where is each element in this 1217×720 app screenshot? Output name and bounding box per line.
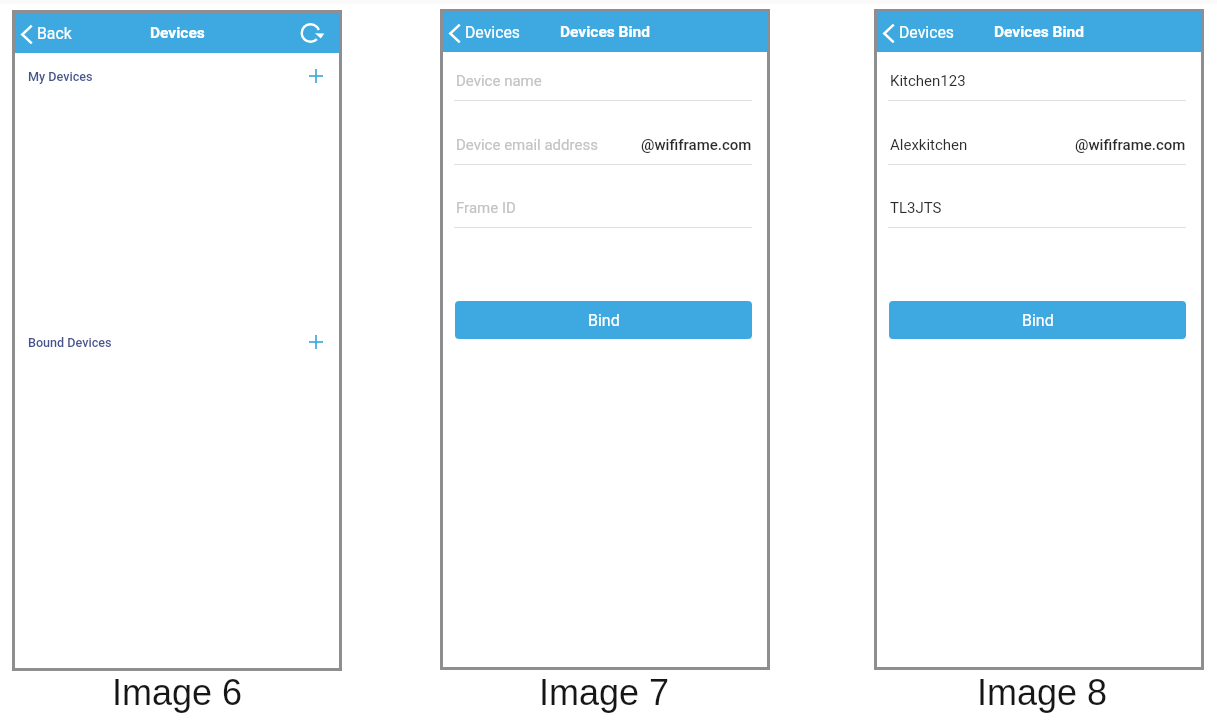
staticText: Frame ID bbox=[456, 199, 516, 217]
staticText: Image 6 bbox=[12, 672, 342, 712]
staticText: Devices Bind bbox=[994, 23, 1085, 41]
staticText: Devices bbox=[899, 23, 954, 42]
button[interactable]: Kitchen123 bbox=[877, 69, 1201, 93]
staticText: @wififrame.com bbox=[641, 136, 752, 154]
button[interactable]: Back bbox=[15, 13, 80, 53]
staticText: Alexkitchen bbox=[890, 136, 968, 154]
button[interactable]: Bind bbox=[455, 301, 752, 339]
button[interactable]: Devices bbox=[443, 12, 528, 52]
staticText: Kitchen123 bbox=[890, 72, 966, 90]
staticText: Image 7 bbox=[439, 672, 769, 712]
staticText: Bind bbox=[1022, 311, 1054, 330]
staticText: Devices Bind bbox=[560, 23, 651, 41]
button[interactable]: Frame ID bbox=[443, 196, 767, 220]
staticText: TL3JTS bbox=[890, 199, 942, 217]
staticText: Bind bbox=[588, 311, 620, 330]
staticText: My Devices bbox=[28, 69, 93, 84]
button[interactable]: Devices bbox=[877, 12, 962, 52]
button[interactable]: Bind bbox=[889, 301, 1186, 339]
staticText: Devices bbox=[465, 23, 520, 42]
staticText: Devices bbox=[150, 24, 205, 42]
button[interactable]: Device email address bbox=[443, 133, 767, 157]
staticText: Image 8 bbox=[877, 672, 1207, 712]
staticText: Device name bbox=[456, 72, 542, 90]
staticText: Back bbox=[37, 24, 72, 43]
staticText: @wififrame.com bbox=[1075, 136, 1186, 154]
staticText: Bound Devices bbox=[28, 335, 112, 350]
button[interactable]: Device name bbox=[443, 69, 767, 93]
button[interactable]: My Devices bbox=[15, 62, 339, 90]
button[interactable]: Bound Devices bbox=[15, 328, 339, 356]
button[interactable]: Alexkitchen bbox=[877, 133, 1201, 157]
staticText: Device email address bbox=[456, 136, 598, 154]
button[interactable]: Refresh devices bbox=[299, 19, 327, 47]
button[interactable]: TL3JTS bbox=[877, 196, 1201, 220]
